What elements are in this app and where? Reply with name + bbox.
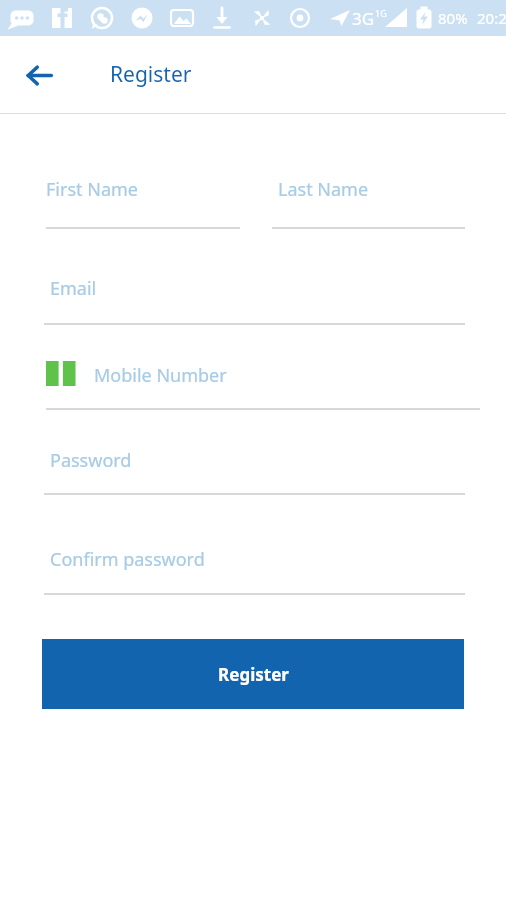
button[interactable]: Back: [18, 54, 60, 96]
staticText: 80%: [438, 8, 468, 28]
button[interactable]: [46, 349, 480, 416]
staticText: First Name: [46, 177, 138, 202]
staticText: Email: [50, 276, 97, 301]
button[interactable]: Register: [42, 639, 464, 709]
staticText: Mobile Number: [94, 363, 227, 388]
button[interactable]: [44, 262, 465, 331]
staticText: Confirm password: [50, 547, 205, 572]
staticText: Last Name: [278, 177, 369, 202]
staticText: Password: [50, 448, 132, 473]
button[interactable]: [46, 163, 240, 235]
button[interactable]: [44, 533, 465, 601]
staticText: 3G: [352, 7, 375, 30]
button[interactable]: Country code Nigeria: [46, 361, 82, 386]
button[interactable]: [44, 434, 465, 501]
staticText: 20:23: [477, 8, 506, 28]
staticText: Register: [218, 663, 289, 686]
staticText: Register: [110, 60, 192, 89]
button[interactable]: [272, 163, 465, 235]
staticText: 1G: [375, 7, 387, 19]
